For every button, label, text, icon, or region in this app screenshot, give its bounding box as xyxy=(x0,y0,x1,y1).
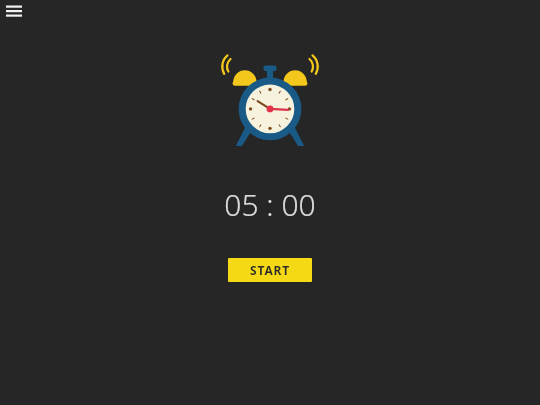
button[interactable]: START xyxy=(228,258,312,282)
staticText: START xyxy=(250,262,290,278)
staticText: 05 : 00 xyxy=(224,184,316,225)
button[interactable]: Menu xyxy=(2,1,26,25)
